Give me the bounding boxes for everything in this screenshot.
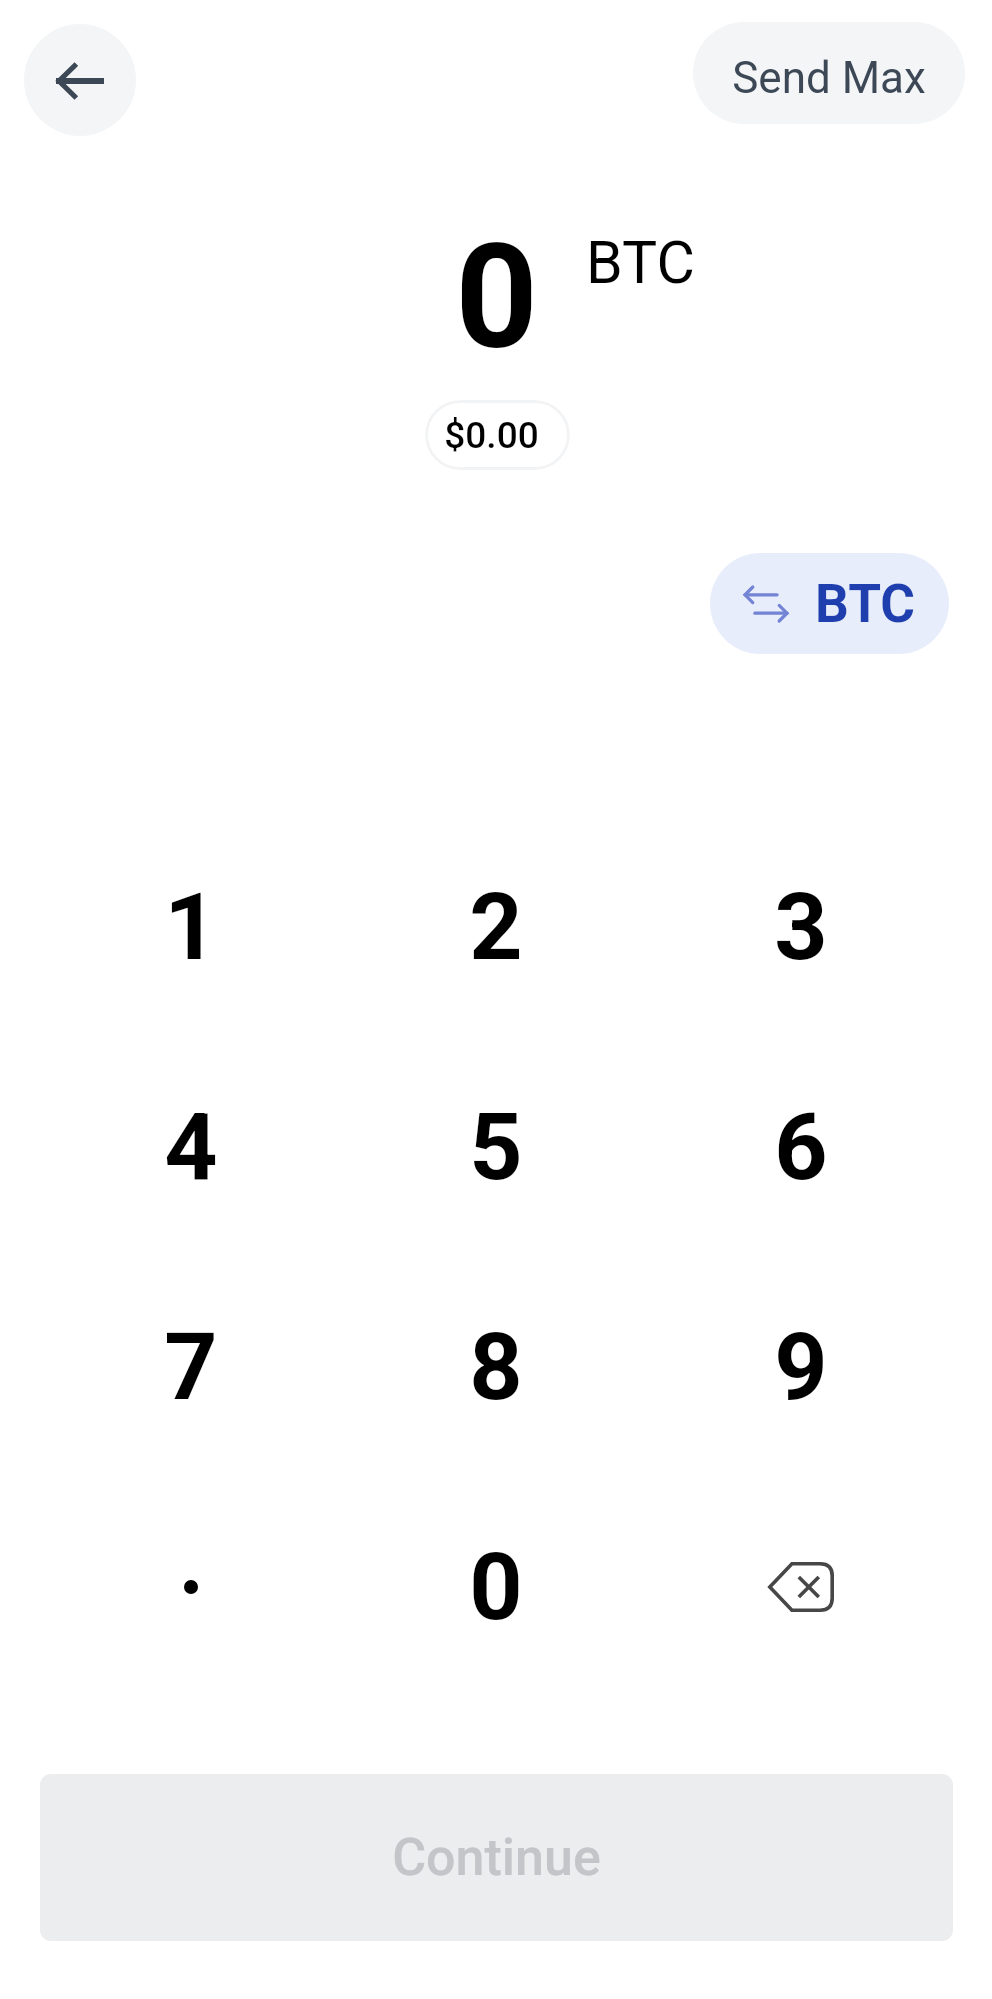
staticText: 3 bbox=[774, 873, 828, 982]
button[interactable]: 7 bbox=[39, 1257, 343, 1477]
button[interactable]: 8 bbox=[343, 1257, 648, 1477]
button[interactable]: 4 bbox=[39, 1037, 343, 1257]
staticText: Continue bbox=[392, 1827, 601, 1888]
staticText: BTC bbox=[586, 228, 695, 297]
staticText: 6 bbox=[774, 1093, 828, 1202]
button[interactable]: 6 bbox=[648, 1037, 953, 1257]
staticText: 5 bbox=[469, 1093, 523, 1202]
staticText: 7 bbox=[164, 1313, 218, 1422]
staticText: 8 bbox=[469, 1313, 523, 1422]
staticText: 1 bbox=[164, 873, 218, 982]
button[interactable]: 1 bbox=[39, 817, 343, 1037]
button[interactable]: $0.00 bbox=[425, 400, 570, 470]
staticText: Send Max bbox=[732, 52, 926, 104]
button[interactable]: 5 bbox=[343, 1037, 648, 1257]
staticText: 2 bbox=[469, 873, 523, 982]
staticText: 0 bbox=[469, 1533, 523, 1642]
staticText: 0 bbox=[455, 213, 538, 382]
staticText: 9 bbox=[774, 1313, 828, 1422]
button[interactable]: Continue bbox=[40, 1774, 953, 1941]
staticText: $0.00 bbox=[444, 414, 539, 457]
button[interactable]: 9 bbox=[648, 1257, 953, 1477]
button[interactable]: Back bbox=[24, 24, 136, 136]
button[interactable]: Send Max bbox=[693, 22, 965, 124]
button[interactable]: Backspace bbox=[648, 1477, 953, 1697]
button[interactable]: 3 bbox=[648, 817, 953, 1037]
button[interactable]: 2 bbox=[343, 817, 648, 1037]
staticText: 4 bbox=[164, 1093, 218, 1202]
button[interactable]: 0 bbox=[343, 1477, 648, 1697]
button[interactable]: BTC bbox=[710, 553, 949, 654]
button[interactable]: Decimal point bbox=[39, 1477, 343, 1697]
staticText: BTC bbox=[815, 573, 915, 635]
